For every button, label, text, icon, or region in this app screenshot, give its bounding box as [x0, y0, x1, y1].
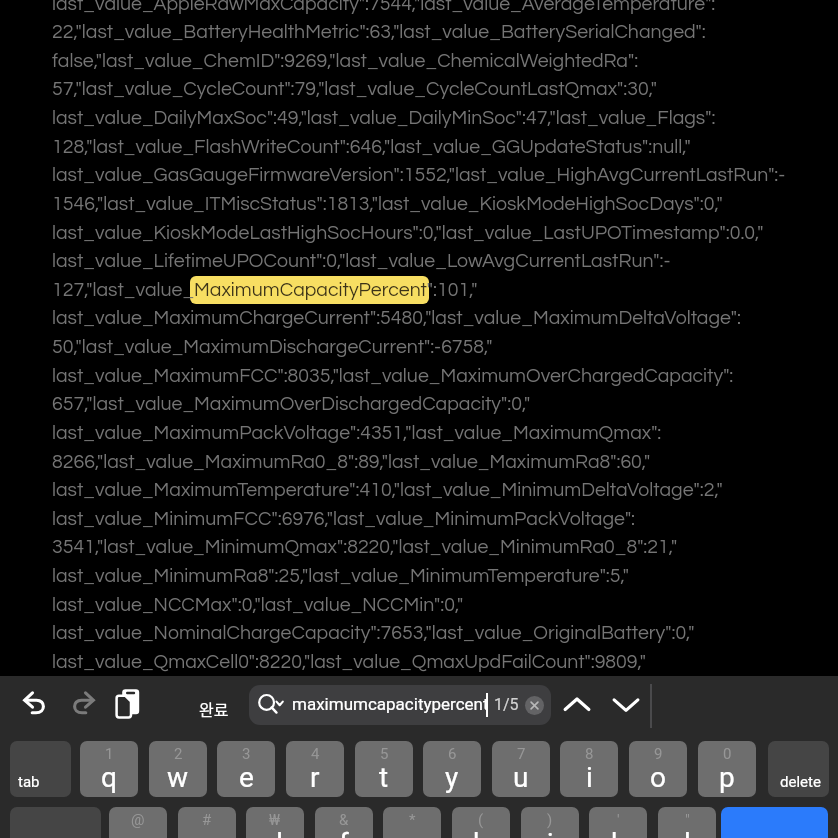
- staticText: last_value_LifetimeUPOCount":0,"last_val…: [52, 251, 671, 271]
- button[interactable]: ₩: [246, 807, 304, 838]
- button[interactable]: ): [521, 807, 579, 838]
- staticText: ₩: [269, 811, 281, 829]
- staticText: ": [685, 811, 690, 829]
- staticText: &: [339, 811, 349, 829]
- staticText: f: [339, 827, 349, 838]
- staticText: last_value_MaximumPackVoltage":4351,"las…: [52, 423, 662, 443]
- staticText: q: [101, 761, 117, 794]
- staticText: 22,"last_value_BatteryHealthMetric":63,"…: [52, 22, 706, 42]
- staticText: last_value_MinimumRa8":25,"last_value_Mi…: [52, 566, 629, 586]
- staticText: y: [445, 761, 459, 794]
- button[interactable]: #: [178, 807, 236, 838]
- staticText: 0: [723, 745, 732, 763]
- staticText: 3541,"last_value_MinimumQmax":8220,"last…: [52, 537, 678, 557]
- staticText: 8: [585, 745, 594, 763]
- staticText: ': [617, 811, 620, 829]
- staticText: e: [239, 761, 254, 794]
- staticText: 완료: [199, 697, 229, 720]
- button[interactable]: Paste: [109, 684, 149, 724]
- staticText: w: [167, 761, 189, 794]
- staticText: 128,"last_value_FlashWriteCount":646,"la…: [52, 137, 691, 157]
- staticText: @: [131, 811, 145, 829]
- staticText: last_value_MaximumFCC":8035,"last_value_…: [52, 366, 734, 386]
- staticText: last_value_AppleRawMaxCapacity":7544,"la…: [52, 0, 716, 14]
- staticText: 7: [517, 745, 526, 763]
- button[interactable]: tab: [10, 741, 71, 797]
- staticText: h: [473, 827, 489, 838]
- button[interactable]: maximumcapacitypercent: [249, 685, 551, 725]
- staticText: delete: [780, 773, 821, 791]
- staticText: last_value_DailyMaxSoc":49,"last_value_D…: [52, 108, 716, 128]
- staticText: last_value_KioskModeLastHighSocHours":0,…: [52, 223, 764, 243]
- button[interactable]: 2: [149, 741, 207, 797]
- staticText: last_value_NominalChargeCapacity":7653,"…: [52, 623, 695, 643]
- staticText: 2: [174, 745, 183, 763]
- staticText: 9: [654, 745, 663, 763]
- staticText: 6: [448, 745, 457, 763]
- button[interactable]: 6: [423, 741, 481, 797]
- button[interactable]: (: [452, 807, 510, 838]
- staticText: 4: [311, 745, 320, 763]
- button[interactable]: 7: [492, 741, 550, 797]
- staticText: #: [202, 811, 212, 829]
- staticText: 1546,"last_value_ITMiscStatus":1813,"las…: [52, 194, 723, 214]
- staticText: 1: [105, 745, 114, 763]
- staticText: last_value_NCCMax":0,"last_value_NCCMin"…: [52, 595, 464, 615]
- button[interactable]: Next match: [604, 684, 648, 728]
- button[interactable]: 0: [698, 741, 756, 797]
- staticText: (: [478, 811, 484, 829]
- button[interactable]: Clear search: [525, 696, 544, 715]
- staticText: k: [611, 827, 626, 838]
- button[interactable]: Redo: [62, 684, 104, 726]
- staticText: j: [547, 827, 554, 838]
- staticText: 127,"last_value_: [52, 280, 195, 300]
- button[interactable]: ": [658, 807, 716, 838]
- staticText: 50,"last_value_MaximumDischargeCurrent":…: [52, 337, 493, 357]
- button[interactable]: delete: [768, 741, 829, 797]
- staticText: 5: [380, 745, 389, 763]
- staticText: a: [130, 827, 146, 838]
- staticText: 1/5: [494, 695, 519, 714]
- button[interactable]: *: [383, 807, 441, 838]
- staticText: l: [684, 827, 691, 838]
- button[interactable]: Undo: [14, 684, 56, 726]
- button[interactable]: ': [589, 807, 647, 838]
- staticText: ): [547, 811, 553, 829]
- staticText: p: [719, 761, 735, 794]
- staticText: i: [586, 761, 593, 794]
- staticText: 127,"last_value_MaximumCapacityPercent":…: [52, 280, 478, 300]
- button[interactable]: Enter: [721, 807, 828, 838]
- staticText: last_value_GasGaugeFirmwareVersion":1552…: [52, 165, 786, 185]
- staticText: u: [513, 761, 529, 794]
- button[interactable]: 5: [355, 741, 413, 797]
- staticText: r: [310, 761, 320, 794]
- staticText: last_value_MinimumFCC":6976,"last_value_…: [52, 509, 636, 529]
- button[interactable]: 9: [629, 741, 687, 797]
- button[interactable]: 1: [80, 741, 138, 797]
- staticText: tab: [18, 773, 40, 791]
- staticText: last_value_MaximumTemperature":410,"last…: [52, 480, 723, 500]
- staticText: 3: [242, 745, 251, 763]
- staticText: false,"last_value_ChemID":9269,"last_val…: [52, 51, 639, 71]
- button[interactable]: &: [315, 807, 373, 838]
- staticText: last_value_QmaxCell0":8220,"last_value_Q…: [52, 652, 646, 672]
- button[interactable]: @: [109, 807, 167, 838]
- staticText: 8266,"last_value_MaximumRa0_8":89,"last_…: [52, 452, 651, 472]
- button[interactable]: 완료: [188, 686, 240, 730]
- staticText: o: [650, 761, 666, 794]
- staticText: maximumcapacitypercent: [292, 694, 489, 714]
- staticText: d: [267, 827, 283, 838]
- staticText: *: [409, 811, 416, 829]
- staticText: last_value_MaximumChargeCurrent":5480,"l…: [52, 308, 741, 328]
- button[interactable]: Previous match: [555, 684, 599, 728]
- button[interactable]: 3: [217, 741, 275, 797]
- staticText: 657,"last_value_MaximumOverDischargedCap…: [52, 394, 531, 414]
- button[interactable]: 4: [286, 741, 344, 797]
- staticText: 57,"last_value_CycleCount":79,"last_valu…: [52, 79, 658, 99]
- staticText: t: [379, 761, 389, 794]
- button[interactable]: 8: [560, 741, 618, 797]
